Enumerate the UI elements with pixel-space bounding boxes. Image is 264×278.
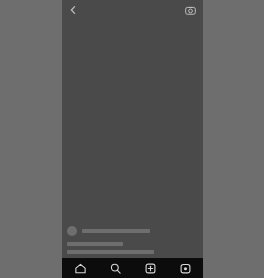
button[interactable]: Home [62,258,98,278]
button[interactable]: Camera [182,2,198,18]
button[interactable]: Back [64,1,82,19]
button[interactable]: Create [133,258,168,278]
button[interactable]: Search [98,258,133,278]
button[interactable]: Profile [168,258,203,278]
